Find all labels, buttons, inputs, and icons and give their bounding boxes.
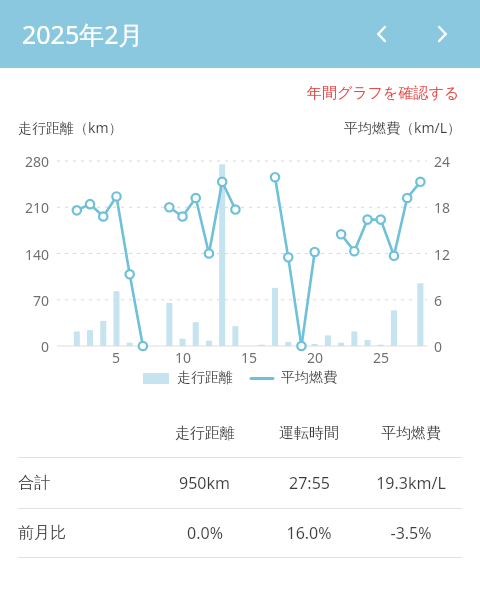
staticText: 27:55 <box>289 472 330 494</box>
staticText: 18 <box>434 198 451 217</box>
staticText: 6 <box>434 291 443 310</box>
staticText: 20 <box>307 348 324 367</box>
staticText: 24 <box>434 152 451 171</box>
staticText: 0 <box>41 337 50 356</box>
staticText: 16.0% <box>286 522 332 544</box>
staticText: 走行距離 <box>177 369 233 387</box>
staticText: 140 <box>25 245 50 264</box>
staticText: 210 <box>25 198 50 217</box>
button[interactable]: 年間グラフを確認する <box>305 80 462 107</box>
staticText: 15 <box>241 348 258 367</box>
staticText: 19.3km/L <box>376 472 446 494</box>
staticText: -3.5% <box>390 522 432 544</box>
staticText: 平均燃費 <box>281 369 337 387</box>
staticText: 平均燃費 <box>381 424 441 443</box>
staticText: 280 <box>25 152 50 171</box>
staticText: 70 <box>33 291 50 310</box>
staticText: 走行距離 <box>175 424 235 443</box>
button[interactable]: 次の月 <box>418 10 466 58</box>
staticText: 2025年2月 <box>22 17 144 51</box>
staticText: 950km <box>179 472 230 494</box>
staticText: 10 <box>175 348 192 367</box>
staticText: 0.0% <box>187 522 223 544</box>
staticText: 前月比 <box>18 523 66 543</box>
staticText: 0 <box>434 337 443 356</box>
staticText: 25 <box>373 348 390 367</box>
staticText: 12 <box>434 245 451 264</box>
button[interactable]: 前の月 <box>358 10 406 58</box>
staticText: 年間グラフを確認する <box>307 84 460 103</box>
staticText: 合計 <box>18 473 50 493</box>
staticText: 5 <box>112 348 121 367</box>
staticText: 走行距離（km） <box>18 118 123 137</box>
staticText: 運転時間 <box>279 424 339 443</box>
staticText: 平均燃費（km/L） <box>344 118 462 137</box>
